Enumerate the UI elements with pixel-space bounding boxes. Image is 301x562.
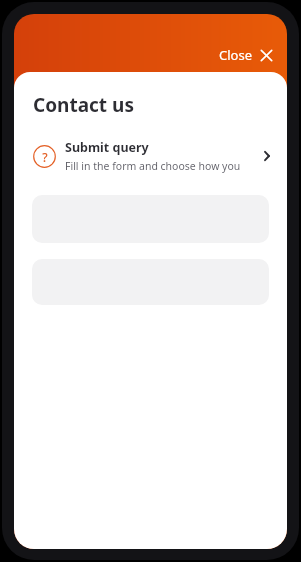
staticText: Contact us	[33, 92, 134, 118]
button[interactable]: ?	[14, 134, 287, 178]
button[interactable]: Close	[213, 42, 279, 68]
staticText: Close	[219, 46, 252, 64]
staticText: Fill in the form and choose how you	[65, 159, 241, 173]
staticText: ?	[42, 149, 48, 165]
staticText: Submit query	[65, 139, 149, 156]
